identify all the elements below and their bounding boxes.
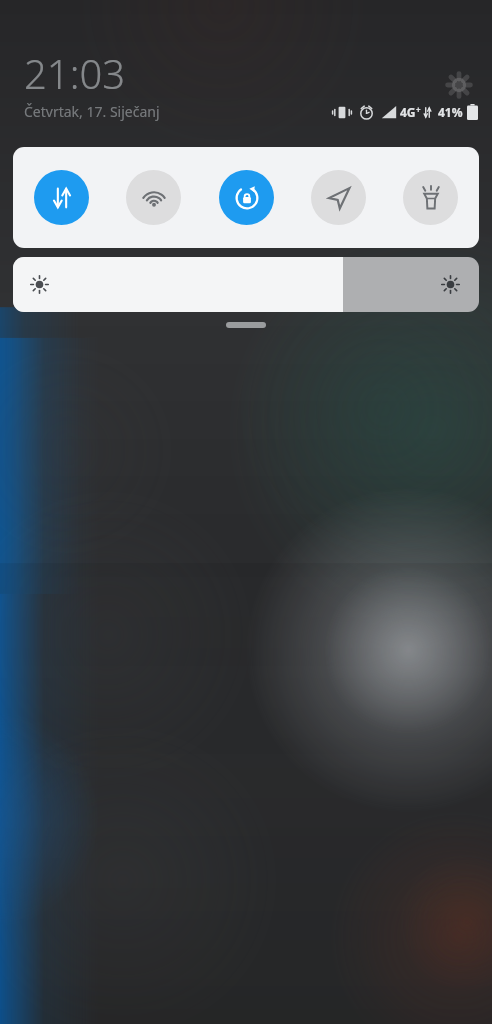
button[interactable]: Brightness [13, 257, 479, 312]
staticText: Četvrtak, 17. Siječanj [24, 102, 160, 121]
staticText: 21:03 [24, 46, 126, 100]
button[interactable]: Expand [226, 322, 266, 328]
staticText: 4G [400, 104, 416, 120]
button[interactable]: Mobile data [34, 170, 89, 225]
button[interactable]: Auto rotate lock [219, 170, 274, 225]
button[interactable]: Settings [444, 70, 474, 100]
button[interactable]: Location [311, 170, 366, 225]
button[interactable]: Flashlight [403, 170, 458, 225]
button[interactable]: Wi-Fi [126, 170, 181, 225]
staticText: 41% [438, 104, 463, 120]
staticText: + [416, 104, 421, 115]
